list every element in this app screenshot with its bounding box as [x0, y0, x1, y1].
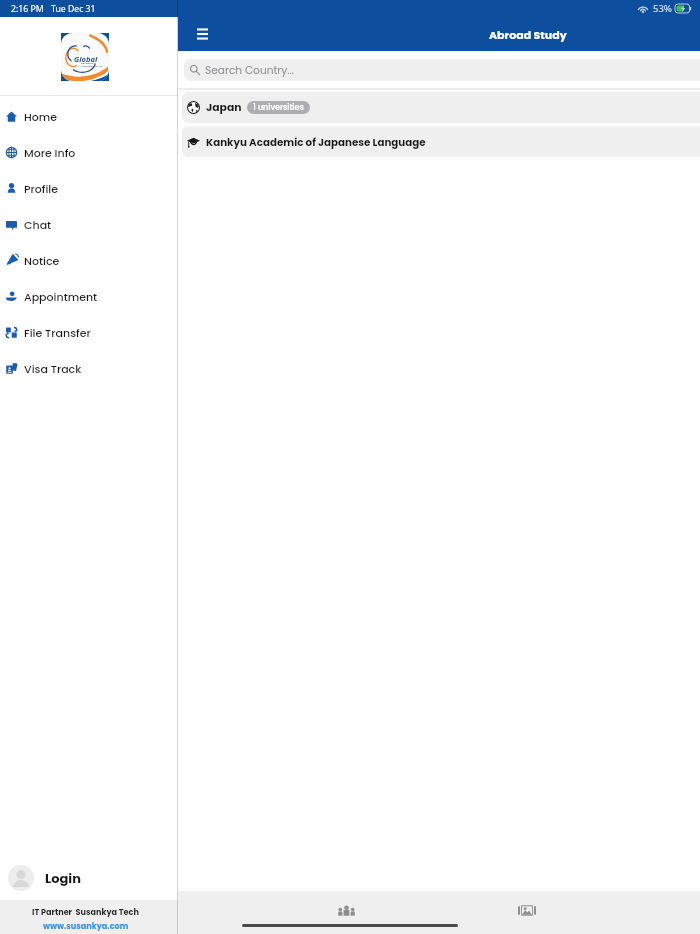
staticText: Appointment	[24, 289, 98, 304]
staticText: 1 universities	[253, 102, 304, 113]
button[interactable]: More Info	[0, 134, 178, 170]
staticText: File Transfer	[24, 325, 91, 340]
staticText: 2:16 PM	[11, 3, 44, 15]
staticText: Japan	[206, 100, 242, 115]
button[interactable]: Home	[0, 98, 178, 134]
staticText: Tue Dec 31	[51, 3, 96, 15]
staticText: Search Country...	[205, 63, 294, 78]
staticText: Notice	[24, 253, 60, 268]
button[interactable]: Search Country...	[184, 59, 700, 81]
button[interactable]: Profile	[0, 170, 178, 206]
button[interactable]: Japan	[182, 92, 700, 123]
staticText: Profile	[24, 181, 59, 196]
staticText: Visa Track	[24, 361, 82, 376]
button[interactable]: Open navigation menu	[190, 25, 215, 42]
staticText: www.susankya.com	[43, 920, 129, 931]
button[interactable]: Login	[0, 858, 178, 898]
staticText: Global	[74, 54, 98, 64]
button[interactable]: Kankyu Academic of Japanese Language	[182, 126, 700, 157]
staticText: Foundation Pvt Ltd	[81, 64, 103, 67]
staticText: Chat	[24, 217, 52, 232]
button[interactable]: Gallery	[509, 894, 545, 926]
staticText: Management	[81, 61, 97, 64]
button[interactable]: Notice	[0, 242, 178, 278]
staticText: IT Partner Susankya Tech	[32, 906, 139, 917]
staticText: Home	[24, 109, 57, 124]
staticText: Kankyu Academic of Japanese Language	[206, 135, 426, 149]
button[interactable]: File Transfer	[0, 314, 178, 350]
staticText: More Info	[24, 145, 76, 160]
staticText: 53%	[653, 2, 672, 15]
staticText: Login	[45, 869, 81, 887]
button[interactable]: Appointment	[0, 278, 178, 314]
staticText: Abroad Study	[489, 27, 567, 42]
button[interactable]: Visa Track	[0, 350, 178, 386]
button[interactable]: Chat	[0, 206, 178, 242]
button[interactable]: Recent apps	[328, 894, 364, 926]
